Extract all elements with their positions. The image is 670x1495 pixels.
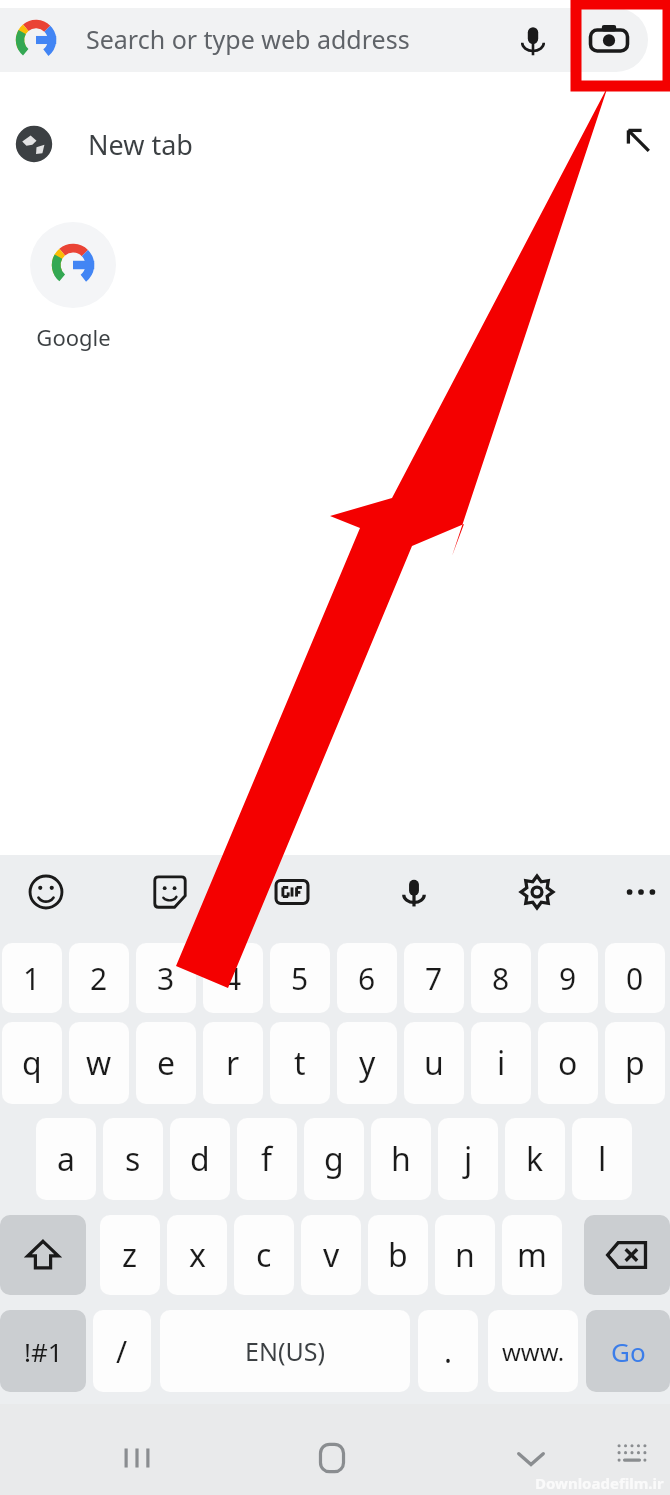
staticText: 7 xyxy=(425,958,443,999)
button[interactable]: y xyxy=(337,1022,397,1104)
button[interactable]: n xyxy=(435,1215,495,1295)
button[interactable]: b xyxy=(368,1215,428,1295)
button[interactable]: q xyxy=(2,1022,62,1104)
staticText: 2 xyxy=(90,958,108,999)
button[interactable]: 2 xyxy=(69,943,129,1013)
staticText: a xyxy=(57,1137,75,1181)
button[interactable]: p xyxy=(605,1022,665,1104)
staticText: l xyxy=(598,1137,607,1181)
staticText: Downloadefilm.ir xyxy=(535,1473,664,1493)
staticText: t xyxy=(294,1041,306,1085)
button[interactable]: Search with camera xyxy=(580,11,638,69)
button[interactable]: 1 xyxy=(2,943,62,1013)
button[interactable]: 3 xyxy=(136,943,196,1013)
button[interactable]: Emoji xyxy=(18,864,74,920)
staticText: d xyxy=(190,1137,210,1181)
button[interactable]: More options xyxy=(613,864,669,920)
button[interactable]: Google xyxy=(22,222,124,352)
button[interactable]: c xyxy=(234,1215,294,1295)
button[interactable]: Shift xyxy=(0,1215,86,1295)
staticText: b xyxy=(388,1233,408,1277)
button[interactable]: j xyxy=(438,1118,498,1200)
button[interactable]: Voice input xyxy=(386,864,442,920)
button[interactable]: d xyxy=(170,1118,230,1200)
button[interactable]: o xyxy=(538,1022,598,1104)
staticText: n xyxy=(455,1233,475,1277)
staticText: s xyxy=(125,1137,141,1181)
staticText: o xyxy=(558,1041,578,1085)
staticText: g xyxy=(324,1137,344,1181)
staticText: Google xyxy=(36,322,111,352)
button[interactable]: 7 xyxy=(404,943,464,1013)
button[interactable]: 9 xyxy=(538,943,598,1013)
staticText: f xyxy=(261,1137,273,1181)
staticText: v xyxy=(323,1233,340,1277)
button[interactable]: EN(US) xyxy=(160,1310,410,1392)
button[interactable]: s xyxy=(103,1118,163,1200)
staticText: www. xyxy=(502,1335,565,1368)
staticText: 0 xyxy=(626,958,644,999)
button[interactable]: i xyxy=(471,1022,531,1104)
button[interactable]: 6 xyxy=(337,943,397,1013)
button[interactable]: !#1 xyxy=(0,1310,86,1392)
staticText: 3 xyxy=(157,958,175,999)
button[interactable]: r xyxy=(203,1022,263,1104)
staticText: c xyxy=(256,1233,272,1277)
button[interactable]: e xyxy=(136,1022,196,1104)
button[interactable]: l xyxy=(572,1118,632,1200)
button[interactable]: Go xyxy=(586,1310,670,1392)
button[interactable]: Hide keyboard xyxy=(491,1418,571,1495)
button[interactable]: / xyxy=(93,1310,151,1392)
staticText: 6 xyxy=(358,958,376,999)
staticText: . xyxy=(444,1331,453,1372)
button[interactable]: Settings xyxy=(509,864,565,920)
button[interactable]: k xyxy=(505,1118,565,1200)
button[interactable]: Change keyboard xyxy=(600,1422,664,1486)
button[interactable]: www. xyxy=(488,1310,578,1392)
button[interactable]: x xyxy=(167,1215,227,1295)
button[interactable]: u xyxy=(404,1022,464,1104)
staticText: 9 xyxy=(559,958,577,999)
button[interactable]: Voice search xyxy=(506,13,560,67)
staticText: / xyxy=(116,1331,128,1372)
staticText: 1 xyxy=(23,958,41,999)
staticText: u xyxy=(424,1041,444,1085)
staticText: Go xyxy=(611,1334,646,1369)
button[interactable]: 8 xyxy=(471,943,531,1013)
button[interactable]: w xyxy=(69,1022,129,1104)
button[interactable]: Stickers xyxy=(142,864,198,920)
staticText: 5 xyxy=(291,958,309,999)
staticText: New tab xyxy=(88,126,193,163)
button[interactable]: z xyxy=(100,1215,160,1295)
staticText: !#1 xyxy=(24,1334,63,1369)
button[interactable]: Search or type web address xyxy=(0,8,648,72)
button[interactable]: Home xyxy=(292,1418,372,1495)
staticText: p xyxy=(625,1041,645,1085)
button[interactable]: g xyxy=(304,1118,364,1200)
button[interactable]: v xyxy=(301,1215,361,1295)
button[interactable]: . xyxy=(418,1310,478,1392)
button[interactable]: 5 xyxy=(270,943,330,1013)
staticText: Search or type web address xyxy=(86,22,410,56)
button[interactable]: Backspace xyxy=(584,1215,670,1295)
button[interactable]: 4 xyxy=(203,943,263,1013)
button[interactable]: New tab xyxy=(0,108,670,180)
button[interactable]: t xyxy=(270,1022,330,1104)
staticText: 4 xyxy=(224,958,242,999)
staticText: h xyxy=(391,1137,411,1181)
button[interactable]: Open in new tab xyxy=(614,116,662,164)
staticText: j xyxy=(464,1137,473,1181)
staticText: z xyxy=(122,1233,138,1277)
button[interactable]: Recent apps xyxy=(97,1418,177,1495)
staticText: EN(US) xyxy=(245,1334,325,1368)
button[interactable]: h xyxy=(371,1118,431,1200)
staticText: y xyxy=(359,1041,376,1085)
button[interactable]: f xyxy=(237,1118,297,1200)
button[interactable]: a xyxy=(36,1118,96,1200)
button[interactable]: m xyxy=(502,1215,562,1295)
staticText: x xyxy=(189,1233,206,1277)
button[interactable]: GIF xyxy=(264,864,320,920)
staticText: m xyxy=(517,1233,547,1277)
button[interactable]: 0 xyxy=(605,943,665,1013)
staticText: i xyxy=(497,1041,506,1085)
